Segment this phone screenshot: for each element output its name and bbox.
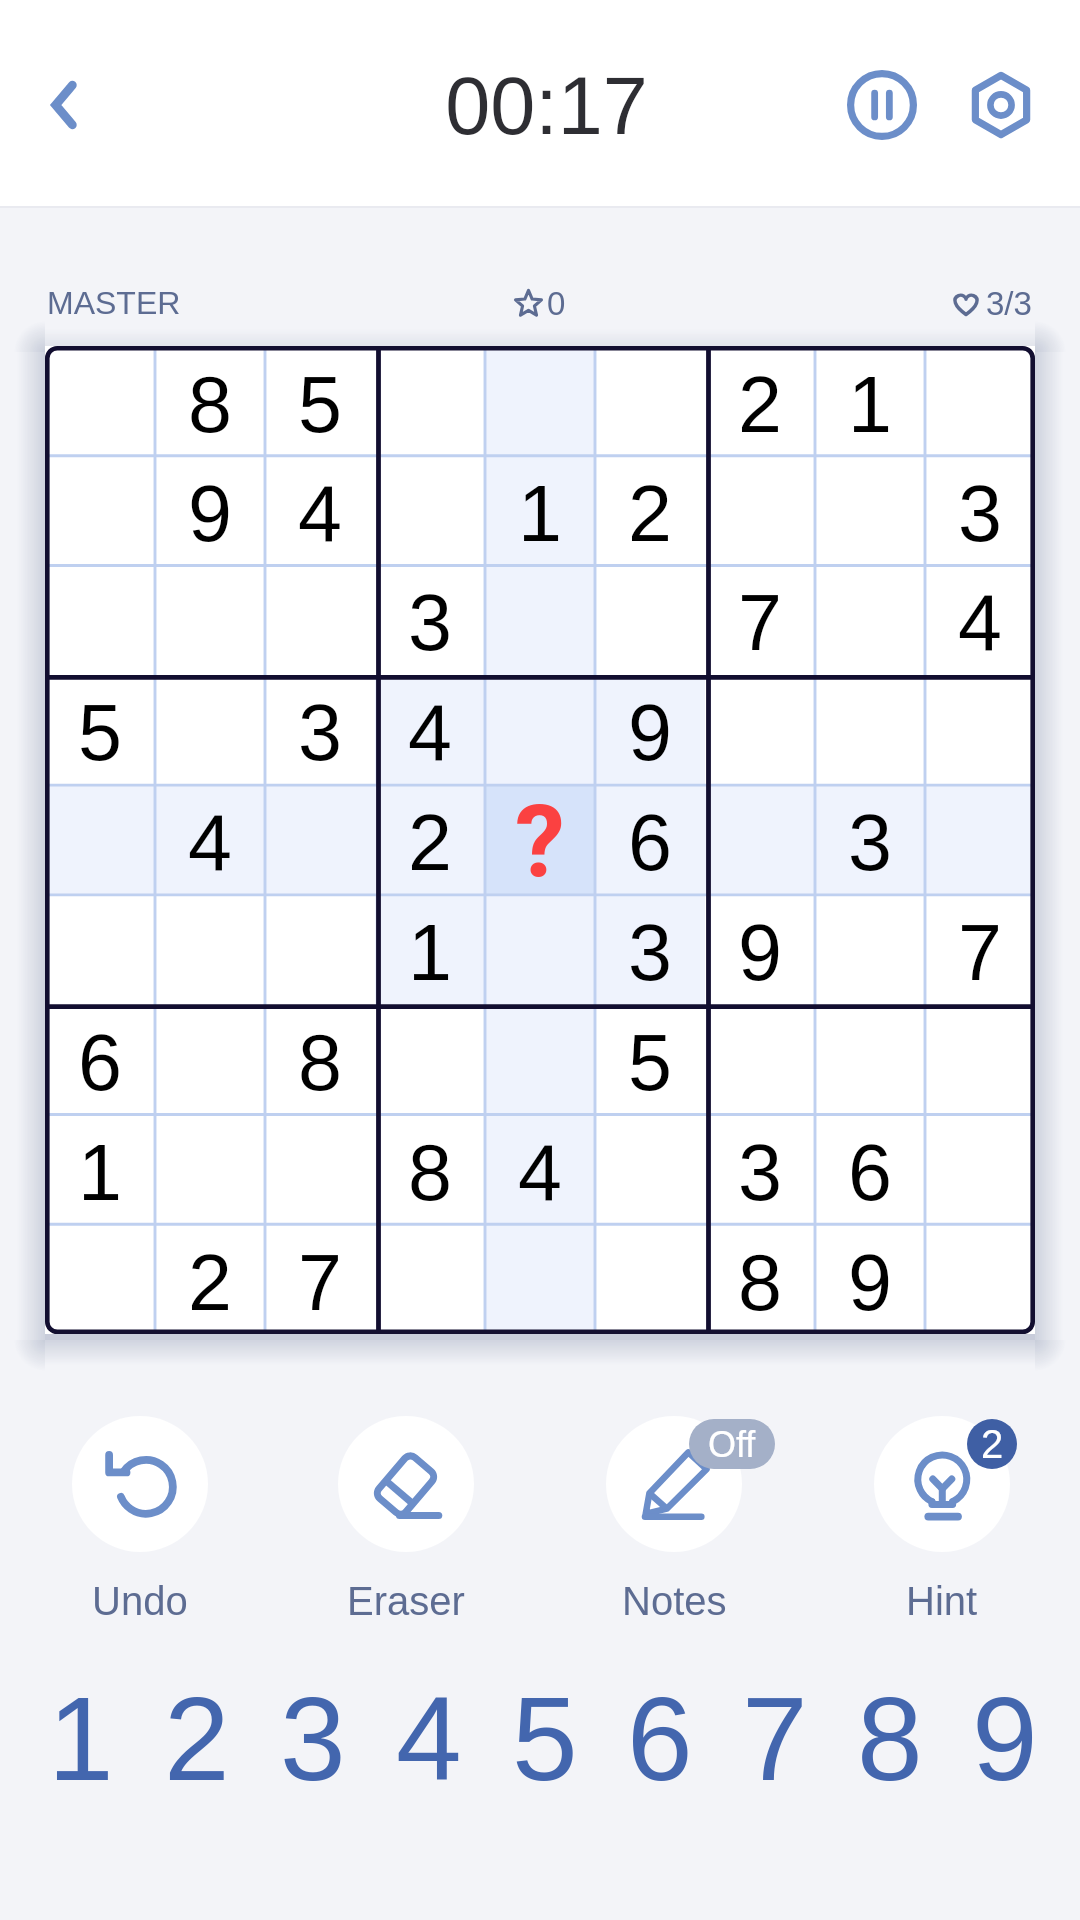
- button[interactable]: [45, 1224, 155, 1334]
- button[interactable]: [815, 894, 925, 1004]
- button[interactable]: 4: [485, 1114, 595, 1224]
- button[interactable]: 6: [45, 1004, 155, 1114]
- button[interactable]: [45, 346, 155, 455]
- button[interactable]: [265, 564, 375, 674]
- button[interactable]: [815, 1004, 925, 1114]
- button[interactable]: [265, 784, 375, 894]
- button[interactable]: [265, 1114, 375, 1224]
- button[interactable]: 7: [705, 564, 815, 674]
- button[interactable]: [45, 455, 155, 564]
- button[interactable]: 6: [815, 1114, 925, 1224]
- button[interactable]: 6: [595, 784, 705, 894]
- button[interactable]: [45, 564, 155, 674]
- button[interactable]: Settings: [957, 61, 1045, 149]
- button[interactable]: [815, 674, 925, 784]
- button[interactable]: 9: [947, 1673, 1062, 1833]
- button[interactable]: 2: [155, 1224, 265, 1334]
- button[interactable]: [705, 784, 815, 894]
- button[interactable]: 4: [925, 564, 1035, 674]
- staticText: 9: [738, 908, 782, 996]
- button[interactable]: 3: [815, 784, 925, 894]
- button[interactable]: [705, 674, 815, 784]
- button[interactable]: [485, 1224, 595, 1334]
- button[interactable]: Back: [22, 63, 106, 147]
- button[interactable]: [815, 455, 925, 564]
- button[interactable]: 2: [874, 1416, 1010, 1552]
- button[interactable]: [155, 564, 265, 674]
- button[interactable]: [595, 346, 705, 455]
- button[interactable]: [595, 1114, 705, 1224]
- button[interactable]: [595, 1224, 705, 1334]
- button[interactable]: 2: [139, 1673, 255, 1833]
- button[interactable]: 1: [23, 1673, 139, 1833]
- button[interactable]: 1: [485, 455, 595, 564]
- button[interactable]: [485, 564, 595, 674]
- button[interactable]: 4: [375, 674, 485, 784]
- button[interactable]: [485, 346, 595, 455]
- button[interactable]: 4: [371, 1673, 487, 1833]
- button[interactable]: 1: [815, 346, 925, 455]
- button[interactable]: [925, 674, 1035, 784]
- button[interactable]: [375, 1224, 485, 1334]
- button[interactable]: 8: [832, 1673, 947, 1833]
- button[interactable]: 4: [155, 784, 265, 894]
- button[interactable]: [265, 894, 375, 1004]
- button[interactable]: 8: [155, 346, 265, 455]
- button[interactable]: 3: [375, 564, 485, 674]
- button[interactable]: [45, 894, 155, 1004]
- staticText: 8: [738, 1238, 782, 1326]
- button[interactable]: 2: [705, 346, 815, 455]
- button[interactable]: 5: [595, 1004, 705, 1114]
- button[interactable]: 3: [925, 455, 1035, 564]
- button[interactable]: 1: [45, 1114, 155, 1224]
- button[interactable]: 9: [705, 894, 815, 1004]
- button[interactable]: [815, 564, 925, 674]
- button[interactable]: Pause: [838, 61, 926, 149]
- button[interactable]: 7: [925, 894, 1035, 1004]
- button[interactable]: [45, 784, 155, 894]
- button[interactable]: 8: [705, 1224, 815, 1334]
- button[interactable]: 8: [375, 1114, 485, 1224]
- button[interactable]: [155, 1004, 265, 1114]
- button[interactable]: ?: [485, 784, 595, 894]
- button[interactable]: 8: [265, 1004, 375, 1114]
- button[interactable]: 5: [265, 346, 375, 455]
- button[interactable]: [375, 455, 485, 564]
- button[interactable]: 7: [265, 1224, 375, 1334]
- button[interactable]: 3: [705, 1114, 815, 1224]
- button[interactable]: [485, 1004, 595, 1114]
- staticText: 6: [848, 1128, 892, 1216]
- button[interactable]: 7: [717, 1673, 832, 1833]
- button[interactable]: 3: [255, 1673, 371, 1833]
- button[interactable]: [155, 1114, 265, 1224]
- button[interactable]: [925, 1004, 1035, 1114]
- button[interactable]: [705, 1004, 815, 1114]
- button[interactable]: Off: [606, 1416, 742, 1552]
- button[interactable]: [375, 1004, 485, 1114]
- button[interactable]: 9: [155, 455, 265, 564]
- button[interactable]: [925, 346, 1035, 455]
- button[interactable]: [925, 1114, 1035, 1224]
- button[interactable]: 6: [602, 1673, 717, 1833]
- button[interactable]: 9: [595, 674, 705, 784]
- button[interactable]: [485, 674, 595, 784]
- button[interactable]: [155, 674, 265, 784]
- button[interactable]: 5: [487, 1673, 602, 1833]
- button[interactable]: [925, 784, 1035, 894]
- button[interactable]: [705, 455, 815, 564]
- button[interactable]: [485, 894, 595, 1004]
- button[interactable]: 3: [595, 894, 705, 1004]
- button[interactable]: Eraser: [338, 1416, 474, 1552]
- button[interactable]: [595, 564, 705, 674]
- button[interactable]: 3: [265, 674, 375, 784]
- button[interactable]: [155, 894, 265, 1004]
- button[interactable]: 2: [375, 784, 485, 894]
- button[interactable]: 9: [815, 1224, 925, 1334]
- button[interactable]: 5: [45, 674, 155, 784]
- button[interactable]: 4: [265, 455, 375, 564]
- button[interactable]: Undo: [72, 1416, 208, 1552]
- button[interactable]: [925, 1224, 1035, 1334]
- button[interactable]: [375, 346, 485, 455]
- button[interactable]: 1: [375, 894, 485, 1004]
- button[interactable]: 2: [595, 455, 705, 564]
